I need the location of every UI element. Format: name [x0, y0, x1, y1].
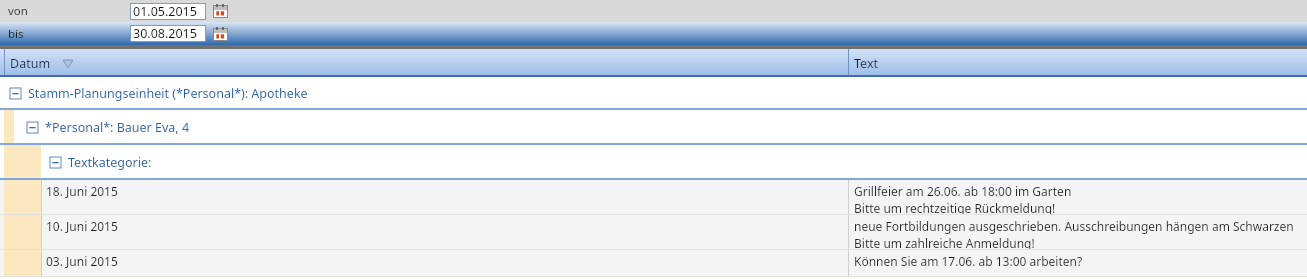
button[interactable]: 03. Juni 2015	[0, 250, 1307, 277]
staticText: bis	[8, 26, 24, 42]
button[interactable]: 18. Juni 2015	[0, 180, 1307, 215]
staticText: 18. Juni 2015	[46, 183, 118, 199]
button[interactable]: Kalender öffnen	[213, 27, 228, 41]
staticText: Bitte um zahlreiche Anmeldung!	[854, 235, 1035, 250]
staticText: *Personal*: Bauer Eva, 4	[45, 119, 190, 136]
staticText: Text	[854, 55, 879, 72]
button[interactable]: Kalender öffnen	[213, 4, 228, 18]
staticText: Textkategorie:	[68, 154, 152, 171]
staticText: 10. Juni 2015	[46, 218, 118, 234]
button[interactable]: 10. Juni 2015	[0, 215, 1307, 250]
staticText: neue Fortbildungen ausgeschrieben. Aussc…	[854, 218, 1307, 234]
button[interactable]: *Personal*: Bauer Eva, 4	[0, 110, 1307, 145]
staticText: Grillfeier am 26.06. ab 18:00 im Garten	[854, 183, 1072, 199]
button[interactable]: 30.08.2015	[130, 25, 206, 42]
button[interactable]: Textkategorie:	[0, 145, 1307, 180]
button[interactable]: Stamm-Planungseinheit (*Personal*): Apot…	[0, 77, 1307, 110]
button[interactable]: Text	[849, 55, 1307, 72]
staticText: Datum	[10, 55, 51, 72]
staticText: 01.05.2015	[133, 3, 197, 20]
staticText: Stamm-Planungseinheit (*Personal*): Apot…	[28, 85, 308, 102]
button[interactable]: 01.05.2015	[130, 3, 206, 20]
staticText: Können Sie am 17.06. ab 13:00 arbeiten?	[854, 253, 1083, 269]
staticText: Bitte um rechtzeitige Rückmeldung!	[854, 200, 1056, 215]
staticText: 30.08.2015	[133, 25, 197, 42]
staticText: 03. Juni 2015	[46, 253, 118, 269]
staticText: von	[8, 3, 28, 19]
button[interactable]: Datum	[5, 55, 848, 72]
